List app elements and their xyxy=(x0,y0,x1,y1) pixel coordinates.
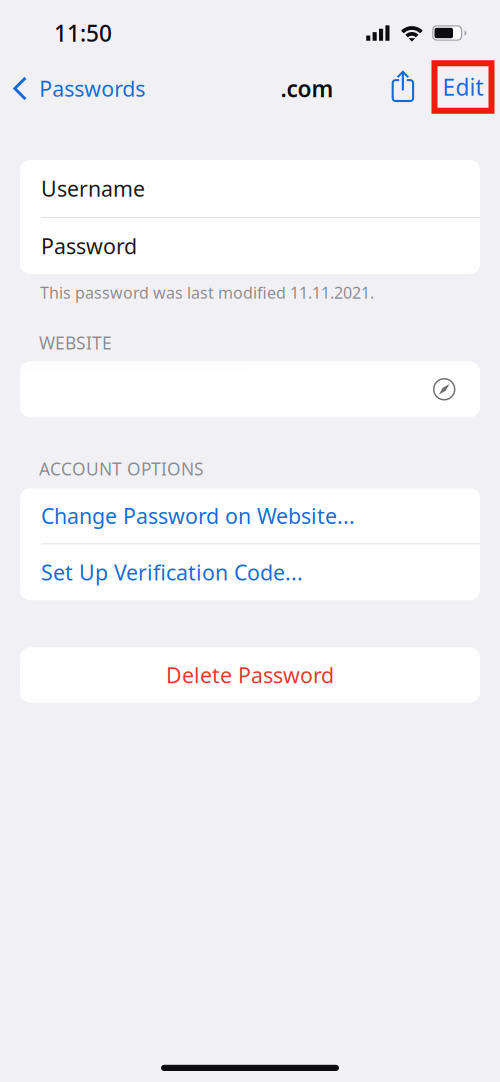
button[interactable]: Share xyxy=(381,67,420,110)
button[interactable]: Password xyxy=(20,218,480,274)
button[interactable]: Set Up Verification Code... xyxy=(20,544,480,600)
staticText: Change Password on Website... xyxy=(41,502,355,530)
staticText: Set Up Verification Code... xyxy=(41,558,303,586)
staticText: This password was last modified 11.11.20… xyxy=(40,282,374,303)
staticText: WEBSITE xyxy=(39,331,112,354)
staticText: Username xyxy=(41,174,145,203)
staticText: Edit xyxy=(442,72,483,102)
button[interactable]: Website xyxy=(0,361,500,417)
staticText: Delete Password xyxy=(166,661,334,689)
button[interactable]: Passwords xyxy=(0,66,145,111)
staticText: Passwords xyxy=(39,74,145,103)
staticText: 11:50 xyxy=(54,18,112,48)
button[interactable]: Delete Password xyxy=(0,647,500,703)
staticText: Password xyxy=(41,232,137,260)
staticText: .com xyxy=(280,73,333,103)
button[interactable]: Change Password on Website... xyxy=(20,488,480,543)
button[interactable]: Username xyxy=(20,160,480,217)
button[interactable]: Edit xyxy=(437,65,494,112)
staticText: ACCOUNT OPTIONS xyxy=(39,457,204,480)
